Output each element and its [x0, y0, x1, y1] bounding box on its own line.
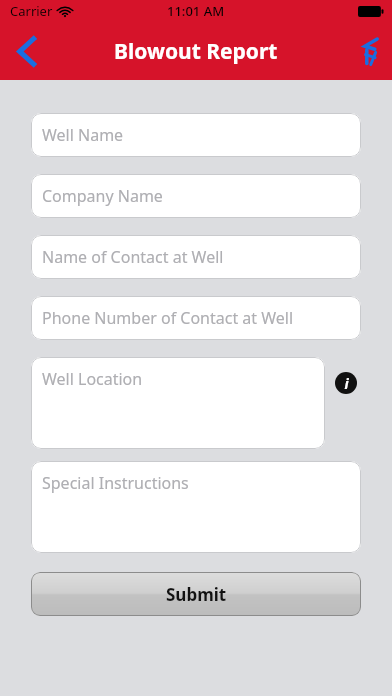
staticText: Name of Contact at Well: [42, 246, 224, 268]
button[interactable]: Back: [0, 22, 52, 80]
staticText: Submit: [166, 583, 227, 606]
button[interactable]: Action: [348, 22, 392, 80]
button[interactable]: Name of Contact at Well: [31, 235, 361, 279]
staticText: Phone Number of Contact at Well: [42, 307, 294, 329]
button[interactable]: Well Name: [31, 113, 361, 157]
staticText: i: [344, 374, 349, 393]
staticText: Special Instructions: [42, 472, 189, 494]
staticText: Well Name: [42, 124, 124, 146]
staticText: Company Name: [42, 185, 163, 207]
button[interactable]: Well Location: [31, 357, 325, 449]
staticText: Blowout Report: [114, 37, 278, 66]
button[interactable]: Phone Number of Contact at Well: [31, 296, 361, 340]
button[interactable]: Special Instructions: [31, 461, 361, 553]
button[interactable]: Submit: [31, 572, 361, 616]
button[interactable]: Information: [331, 368, 361, 398]
staticText: 11:01 AM: [167, 2, 225, 20]
staticText: Carrier: [10, 2, 53, 20]
staticText: Well Location: [42, 368, 143, 390]
button[interactable]: Company Name: [31, 174, 361, 218]
